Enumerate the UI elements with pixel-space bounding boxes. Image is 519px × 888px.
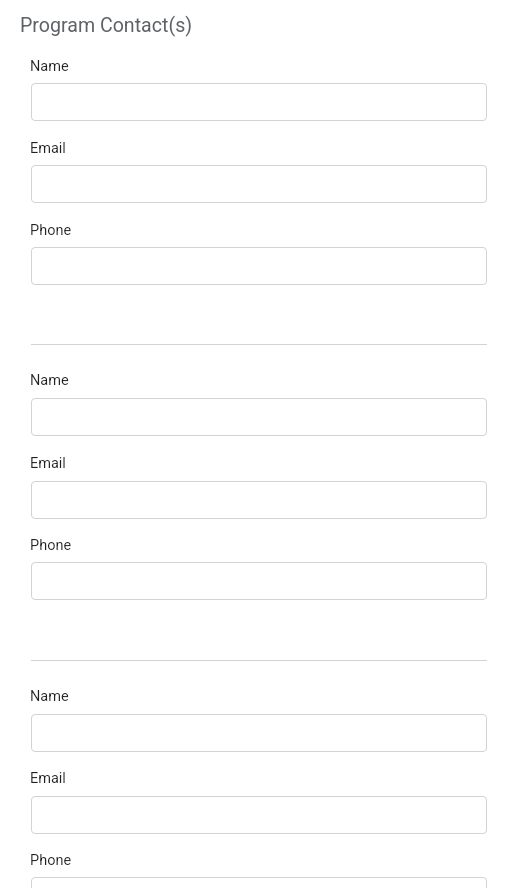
button[interactable]: Phone input, contact 2 bbox=[31, 562, 487, 600]
button[interactable]: Email input, contact 1 bbox=[31, 165, 487, 203]
staticText: Email bbox=[30, 455, 66, 472]
button[interactable]: Name input, contact 1 bbox=[31, 83, 487, 121]
button[interactable]: Email input, contact 3 bbox=[31, 796, 487, 834]
button[interactable]: Name input, contact 2 bbox=[31, 398, 487, 436]
button[interactable]: Phone input, contact 1 bbox=[31, 247, 487, 285]
staticText: Email bbox=[30, 140, 66, 157]
staticText: Phone bbox=[30, 852, 72, 869]
staticText: Name bbox=[30, 688, 69, 705]
button[interactable]: Phone input, contact 3 bbox=[31, 877, 487, 888]
staticText: Phone bbox=[30, 222, 72, 239]
staticText: Name bbox=[30, 58, 69, 75]
button[interactable]: Name input, contact 3 bbox=[31, 714, 487, 752]
button[interactable]: Email input, contact 2 bbox=[31, 481, 487, 519]
staticText: Email bbox=[30, 770, 66, 787]
staticText: Phone bbox=[30, 537, 72, 554]
staticText: Program Contact(s) bbox=[20, 14, 193, 37]
staticText: Name bbox=[30, 372, 69, 389]
